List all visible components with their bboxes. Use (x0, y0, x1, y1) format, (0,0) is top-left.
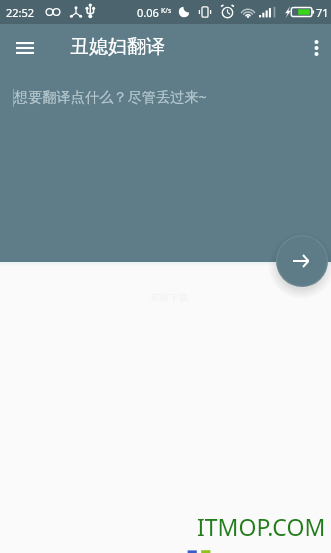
staticText: 丑媳妇翻译 (70, 35, 165, 59)
staticText: K/s (161, 6, 172, 16)
button[interactable]: Menu (3, 26, 47, 70)
staticText: 71 (316, 5, 329, 20)
staticText: 22:52 (6, 5, 35, 20)
staticText: 想要翻译点什么？尽管丢过来~ (14, 87, 207, 106)
button[interactable]: More options (294, 26, 331, 70)
button[interactable]: Translate (276, 235, 328, 287)
staticText: 0.06 (137, 5, 159, 20)
staticText: ITMOP.COM (197, 511, 326, 542)
